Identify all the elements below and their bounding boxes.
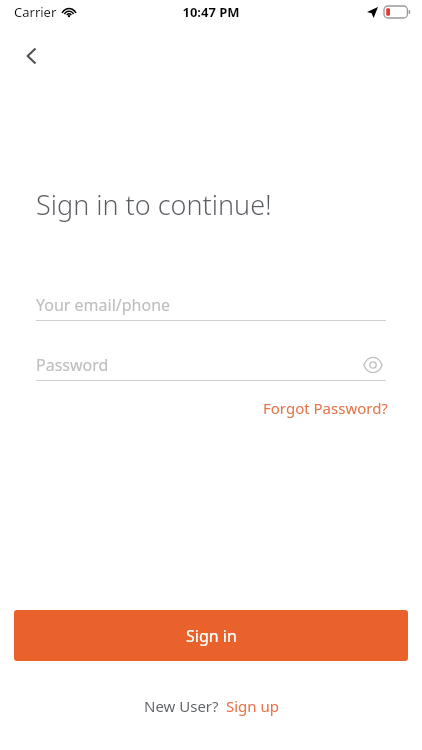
staticText: Your email/phone <box>36 294 171 316</box>
staticText: Carrier <box>14 3 57 21</box>
staticText: Forgot Password? <box>263 398 388 418</box>
staticText: Sign in to continue! <box>36 186 272 223</box>
button[interactable]: Sign up <box>226 696 279 716</box>
staticText: New User? <box>144 696 219 716</box>
button[interactable]: Your email/phone <box>36 289 386 321</box>
button[interactable]: Password <box>36 349 386 381</box>
button[interactable]: Sign in <box>14 610 408 661</box>
staticText: 10:47 PM <box>182 3 240 21</box>
staticText: Sign in <box>186 625 237 647</box>
staticText: Password <box>36 354 109 376</box>
button[interactable]: Forgot Password? <box>261 395 390 421</box>
button[interactable]: Back <box>8 32 56 80</box>
staticText: Sign up <box>226 696 279 716</box>
button[interactable]: Show password <box>360 352 386 378</box>
